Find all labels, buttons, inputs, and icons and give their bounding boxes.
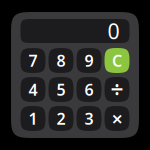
- button[interactable]: C: [104, 48, 129, 73]
- staticText: ÷: [110, 74, 123, 104]
- button[interactable]: 8: [48, 48, 73, 73]
- button[interactable]: 7: [20, 48, 45, 73]
- button[interactable]: 3: [76, 106, 101, 131]
- button[interactable]: 6: [76, 77, 101, 102]
- button[interactable]: 1: [20, 106, 45, 131]
- staticText: 5: [56, 79, 65, 100]
- button[interactable]: ÷: [104, 77, 129, 102]
- staticText: 3: [84, 108, 93, 129]
- button[interactable]: ×: [104, 106, 129, 131]
- button[interactable]: 9: [76, 48, 101, 73]
- staticText: 4: [28, 79, 37, 100]
- staticText: ×: [111, 105, 122, 132]
- button[interactable]: 5: [48, 77, 73, 102]
- button[interactable]: 2: [48, 106, 73, 131]
- staticText: 9: [84, 50, 93, 71]
- staticText: 6: [84, 79, 93, 100]
- staticText: 7: [28, 50, 37, 71]
- button[interactable]: 4: [20, 77, 45, 102]
- staticText: C: [112, 50, 122, 71]
- staticText: 1: [28, 108, 37, 129]
- staticText: 2: [56, 108, 65, 129]
- staticText: 0: [107, 17, 119, 45]
- staticText: 8: [56, 50, 65, 71]
